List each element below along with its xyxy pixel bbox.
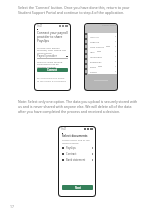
staticText: Connect <box>47 68 58 72</box>
staticText: To find your payroll provider, start typ… <box>37 46 68 55</box>
staticText: Please select one of the options below <box>62 138 95 144</box>
button[interactable]: Zellis <box>90 64 116 69</box>
staticText: Moorepay <box>90 55 102 58</box>
staticText: Select to allow sharing. Permissions can… <box>37 60 68 69</box>
button[interactable]: Payroll provider <box>37 54 68 58</box>
button[interactable]: Payfit <box>90 69 116 74</box>
button[interactable]: Contract <box>62 151 93 157</box>
staticText: BrightPay <box>90 60 102 63</box>
staticText: Sage 50 <box>90 40 100 43</box>
staticText: Payslips <box>66 146 76 150</box>
staticText: Payroll provider <box>37 54 57 58</box>
staticText: ADP UK <box>90 35 99 38</box>
staticText: Next <box>75 186 81 190</box>
button[interactable]: Bank statement <box>62 157 93 163</box>
button[interactable]: BrightPay <box>90 59 116 64</box>
staticText: Payfit <box>90 70 97 73</box>
staticText: Select documents <box>62 134 88 138</box>
button[interactable]: ADP UK <box>90 34 116 39</box>
staticText: 17 <box>10 204 15 209</box>
button[interactable]: IRIS <box>90 49 116 54</box>
button[interactable]: Moorepay <box>90 54 116 59</box>
staticText: Note: Select only one option. The data y… <box>18 99 140 114</box>
staticText: 9:41 <box>61 127 67 131</box>
staticText: Contract <box>66 152 77 156</box>
button[interactable]: Xero Payroll <box>90 44 116 49</box>
button[interactable]: Connect <box>37 68 68 72</box>
button[interactable]: Back <box>61 132 64 135</box>
staticText: Zellis <box>90 65 96 68</box>
staticText: Payroll provider <box>102 24 117 27</box>
staticText: Bank statement <box>66 158 86 162</box>
staticText: Connect your payroll provider to share P… <box>37 31 68 43</box>
button[interactable]: Next <box>62 185 93 190</box>
staticText: 9:41 <box>37 24 43 28</box>
staticText: By continuing you agree to the Terms & C… <box>37 76 67 82</box>
button[interactable]: Payslips <box>62 145 93 151</box>
button[interactable]: Back <box>36 28 39 31</box>
staticText: Select the 'Connect' button. Once you ha… <box>18 5 136 15</box>
staticText: Xero Payroll <box>90 45 104 48</box>
staticText: IRIS <box>90 50 95 53</box>
button[interactable]: Sage 50 <box>90 39 116 44</box>
